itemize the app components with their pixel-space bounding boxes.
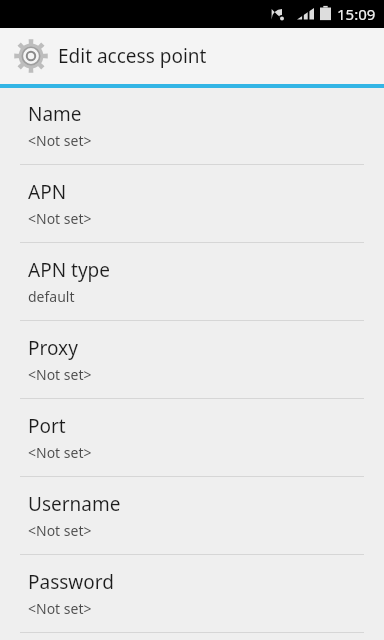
button[interactable]: Password: [0, 556, 384, 634]
staticText: <Not set>: [28, 443, 92, 462]
staticText: <Not set>: [28, 209, 92, 228]
button[interactable]: Name: [0, 88, 384, 166]
button[interactable]: APN type: [0, 244, 384, 322]
staticText: <Not set>: [28, 365, 92, 384]
staticText: <Not set>: [28, 599, 92, 618]
staticText: Password: [28, 569, 114, 595]
button[interactable]: Port: [0, 400, 384, 478]
staticText: Port: [28, 413, 66, 439]
staticText: Proxy: [28, 335, 78, 361]
staticText: <Not set>: [28, 131, 92, 150]
staticText: 15:09: [337, 4, 376, 24]
button[interactable]: Proxy: [0, 322, 384, 400]
staticText: APN type: [28, 257, 110, 283]
staticText: <Not set>: [28, 521, 92, 540]
staticText: Edit access point: [58, 43, 207, 69]
staticText: default: [28, 287, 75, 306]
staticText: APN: [28, 179, 67, 205]
button[interactable]: APN: [0, 166, 384, 244]
staticText: Name: [28, 101, 82, 127]
button[interactable]: Username: [0, 478, 384, 556]
staticText: Username: [28, 491, 121, 517]
